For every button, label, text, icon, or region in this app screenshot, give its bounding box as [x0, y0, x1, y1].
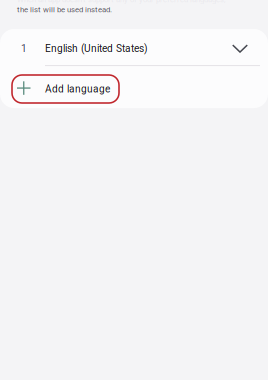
button[interactable]: 1	[0, 29, 268, 65]
button[interactable]: Add language	[0, 66, 268, 108]
staticText: 1	[21, 43, 27, 54]
staticText: the list will be used instead.	[17, 5, 112, 14]
staticText: English (United States)	[45, 43, 148, 54]
staticText: Add language	[45, 83, 110, 95]
